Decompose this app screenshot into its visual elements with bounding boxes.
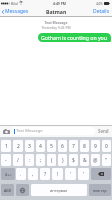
staticText: ! (57, 171, 59, 178)
button[interactable]: ’ (78, 168, 89, 180)
button[interactable]: ? (40, 168, 50, 180)
button[interactable]: #+= (1, 168, 15, 180)
staticText: / (17, 157, 19, 164)
staticText: Batman (46, 8, 67, 15)
staticText: - (5, 157, 7, 164)
staticText: ( (51, 157, 53, 164)
button[interactable]: Text Message (12, 127, 95, 135)
button[interactable]: 9 (91, 140, 100, 152)
button[interactable]: нов стр (89, 184, 111, 196)
button[interactable]: , (28, 168, 38, 180)
button[interactable]: - (1, 154, 11, 166)
staticText: ) (62, 157, 64, 164)
button[interactable]: 4 (36, 140, 45, 152)
button[interactable]: / (13, 154, 23, 166)
button[interactable]: . (16, 168, 26, 180)
staticText: 7 (72, 143, 75, 150)
staticText: 9 (94, 143, 97, 150)
button[interactable]: интервал (31, 184, 87, 196)
button[interactable]: : (25, 154, 34, 166)
staticText: . (20, 171, 22, 178)
button[interactable]: Gotham is counting on you (38, 33, 111, 42)
staticText: Text Message (16, 128, 43, 134)
staticText: Messages (5, 8, 29, 15)
staticText: ? (44, 171, 47, 178)
staticText: ’ (83, 171, 84, 178)
button[interactable]: 6 (58, 140, 67, 152)
staticText: 2 (17, 143, 20, 150)
button[interactable]: 5 (47, 140, 56, 152)
staticText: Send (98, 128, 109, 134)
staticText: Yesterday 9:43 PM (0, 25, 112, 30)
staticText: 4 (39, 143, 42, 150)
staticText: 1 (5, 143, 8, 150)
button[interactable]: $ (69, 154, 78, 166)
button[interactable]: 0 (102, 140, 111, 152)
button[interactable]: Details (91, 7, 112, 16)
button[interactable]: АБВ (1, 184, 14, 196)
button[interactable]: ; (36, 154, 45, 166)
staticText: $ (72, 157, 75, 164)
staticText: : (29, 157, 31, 164)
button[interactable]: Take photo (2, 127, 11, 136)
staticText: Bilal (11, 1, 18, 6)
staticText: 6 (61, 143, 64, 150)
staticText: , (32, 171, 34, 178)
staticText: #+= (5, 172, 12, 177)
button[interactable]: Switch keyboard (16, 184, 29, 196)
staticText: ; (40, 157, 42, 164)
button[interactable]: & (80, 154, 89, 166)
button[interactable]: 7 (69, 140, 78, 152)
staticText: Text Message (0, 20, 112, 25)
button[interactable]: @ (91, 154, 100, 166)
button[interactable]: Send (97, 126, 110, 136)
button[interactable]: 3 (25, 140, 34, 152)
button[interactable]: ( (47, 154, 56, 166)
button[interactable]: ' (65, 168, 76, 180)
staticText: & (83, 157, 87, 164)
button[interactable]: 1 (1, 140, 11, 152)
button[interactable]: Messages (0, 7, 31, 16)
button[interactable]: 2 (13, 140, 23, 152)
button[interactable]: " (102, 154, 111, 166)
staticText: Gotham is counting on you (41, 34, 107, 41)
button[interactable]: ) (58, 154, 67, 166)
staticText: 8 (83, 143, 86, 150)
staticText: @ (93, 157, 98, 164)
button[interactable]: Backspace (91, 168, 111, 180)
staticText: 44% (96, 1, 103, 6)
staticText: 5 (50, 143, 53, 150)
staticText: ' (70, 171, 72, 178)
staticText: 0 (105, 143, 108, 150)
staticText: интервал (50, 188, 68, 193)
staticText: 3 (28, 143, 31, 150)
staticText: АБВ (4, 188, 11, 193)
staticText: нов стр (93, 188, 107, 193)
staticText: " (105, 157, 108, 164)
button[interactable]: 8 (80, 140, 89, 152)
button[interactable]: ! (52, 168, 63, 180)
staticText: 4:49 PM (53, 1, 66, 6)
